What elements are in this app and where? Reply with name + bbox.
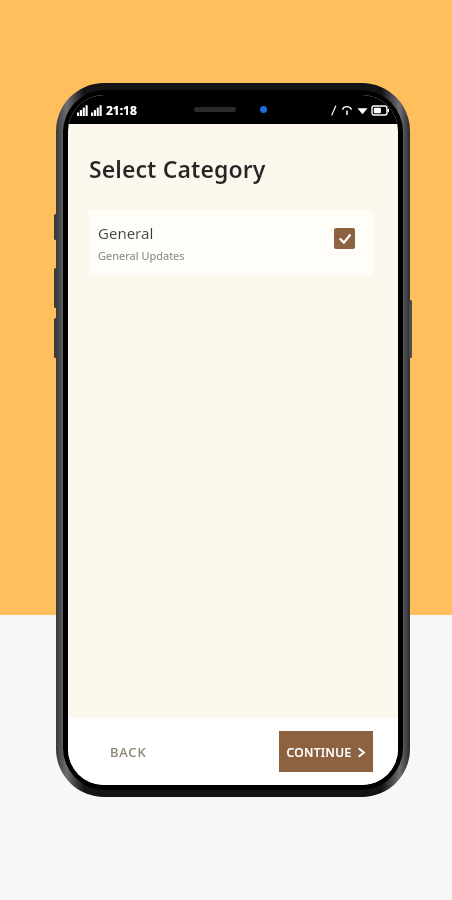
button[interactable]: BACK: [98, 735, 159, 769]
staticText: General Updates: [98, 248, 185, 263]
button[interactable]: General selected: [334, 228, 355, 249]
staticText: 21:18: [106, 102, 137, 118]
staticText: BACK: [110, 743, 147, 761]
button[interactable]: CONTINUE: [279, 731, 373, 772]
staticText: Select Category: [89, 153, 266, 184]
staticText: General: [98, 223, 154, 243]
staticText: CONTINUE: [286, 744, 352, 760]
button[interactable]: General: [89, 210, 373, 275]
